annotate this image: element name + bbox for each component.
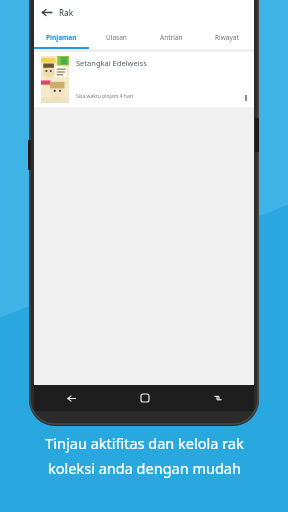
button[interactable]: Back — [34, 385, 108, 411]
staticText: Ulasan — [106, 33, 127, 42]
button[interactable]: Home — [108, 385, 181, 411]
button[interactable]: More options — [238, 56, 254, 103]
button[interactable]: Pinjaman — [34, 25, 89, 49]
button[interactable]: Back — [34, 0, 59, 25]
staticText: Rak — [59, 7, 74, 18]
staticText: koleksi anda dengan mudah — [48, 458, 241, 478]
staticText: Setangkai Edelweiss — [76, 58, 147, 68]
button[interactable]: Riwayat — [199, 25, 254, 49]
staticText: Riwayat — [215, 33, 239, 42]
button[interactable]: Antrian — [144, 25, 199, 49]
button[interactable]: Recent apps — [181, 385, 254, 411]
staticText: Tinjau aktifitas dan kelola rak — [45, 433, 244, 453]
staticText: Sisa waktu pinjam 4 hari — [76, 93, 134, 100]
button[interactable]: Setangkai Edelweiss — [34, 52, 254, 107]
staticText: Antrian — [160, 33, 183, 42]
button[interactable]: Ulasan — [89, 25, 144, 49]
staticText: Pinjaman — [46, 33, 77, 42]
